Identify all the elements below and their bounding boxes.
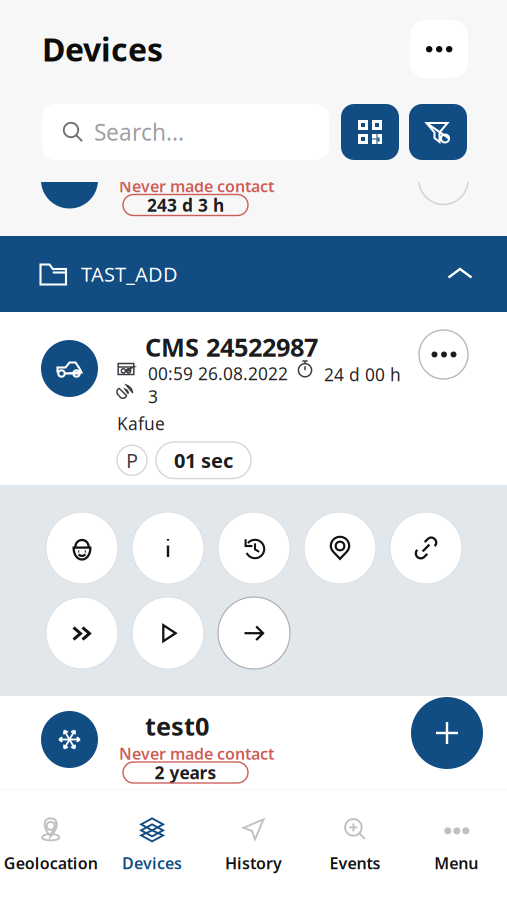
- staticText: Never made contact: [119, 743, 274, 764]
- button[interactable]: More options: [410, 20, 468, 78]
- button[interactable]: Scan QR code: [341, 104, 399, 160]
- button[interactable]: Play: [132, 597, 204, 669]
- staticText: TAST_ADD: [81, 261, 178, 287]
- staticText: P: [126, 447, 138, 474]
- staticText: Devices: [122, 852, 182, 874]
- button[interactable]: Filter: [409, 104, 467, 160]
- button[interactable]: History: [218, 512, 290, 584]
- staticText: Geolocation: [4, 852, 98, 874]
- staticText: Search...: [94, 117, 184, 147]
- button[interactable]: Link: [390, 512, 462, 584]
- staticText: 24 d 00 h: [324, 363, 401, 386]
- button[interactable]: Device options: [419, 330, 468, 379]
- button[interactable]: Go: [218, 597, 290, 669]
- staticText: 2 years: [154, 761, 216, 784]
- button[interactable]: Geolocation: [0, 790, 101, 900]
- button[interactable]: Menu: [406, 790, 507, 900]
- button[interactable]: Info: [132, 512, 204, 584]
- staticText: 01 sec: [174, 447, 233, 474]
- staticText: 3: [148, 385, 158, 408]
- staticText: Devices: [42, 28, 163, 70]
- staticText: Never made contact: [119, 175, 274, 197]
- staticText: CMS 24522987: [145, 330, 318, 364]
- staticText: Kafue: [117, 412, 165, 435]
- staticText: History: [225, 852, 282, 874]
- button[interactable]: History: [203, 790, 304, 900]
- button[interactable]: Events: [304, 790, 406, 900]
- button[interactable]: Devices: [101, 790, 203, 900]
- button[interactable]: Fast forward: [46, 597, 118, 669]
- staticText: Events: [329, 852, 380, 874]
- staticText: 243 d 3 h: [147, 193, 224, 216]
- button[interactable]: TAST_ADD: [0, 236, 507, 312]
- staticText: test0: [145, 709, 209, 743]
- button[interactable]: Location: [304, 512, 376, 584]
- staticText: 00:59 26.08.2022: [148, 362, 288, 385]
- button[interactable]: Driver: [46, 512, 118, 584]
- button[interactable]: Add device: [411, 697, 483, 769]
- staticText: Menu: [434, 852, 478, 874]
